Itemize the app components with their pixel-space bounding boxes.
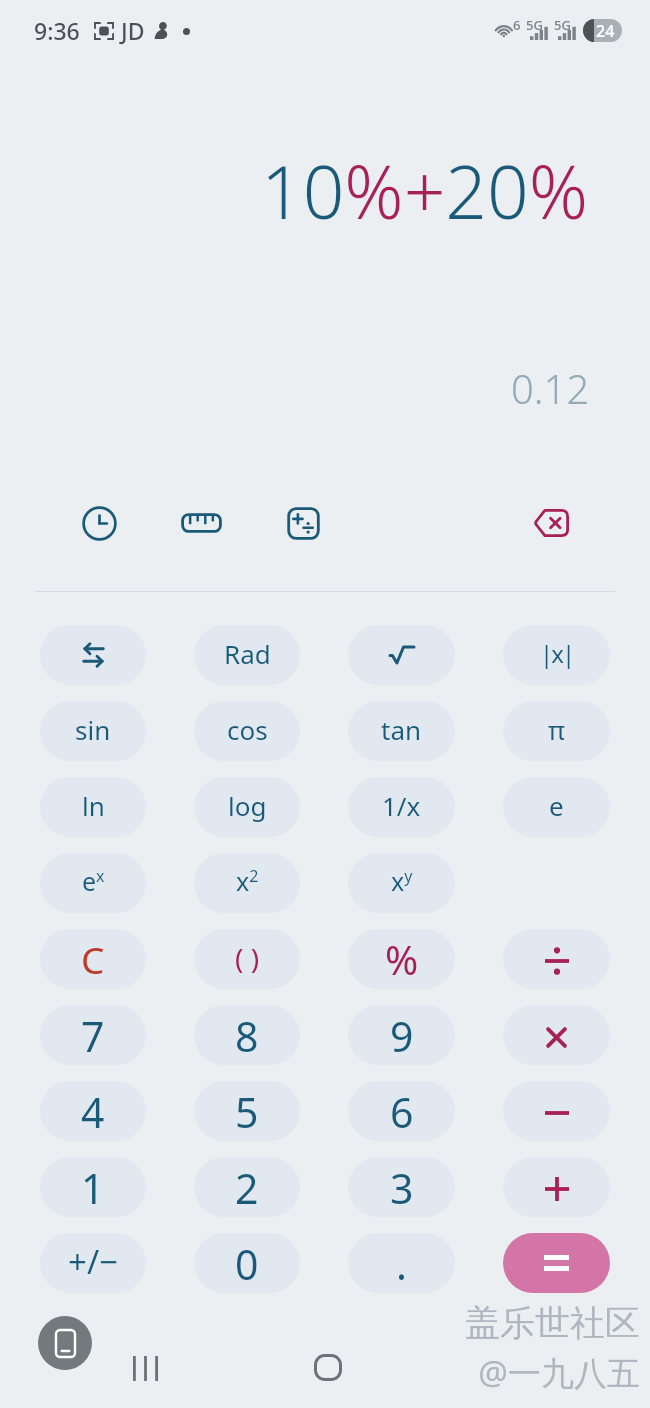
staticText: 9:36	[34, 15, 80, 46]
button[interactable]: x2	[194, 853, 300, 913]
staticText: 0	[235, 1236, 259, 1292]
staticText: sin	[75, 712, 111, 747]
staticText: 4	[81, 1084, 105, 1140]
button[interactable]: sin	[40, 701, 146, 761]
button[interactable]	[503, 1005, 610, 1065]
staticText: x2	[236, 864, 259, 898]
button[interactable]: Backspace	[530, 502, 572, 544]
button[interactable]: tan	[348, 701, 455, 761]
button[interactable]: %	[348, 929, 455, 989]
button[interactable]: ex	[40, 853, 146, 913]
staticText: 24	[596, 20, 615, 42]
button[interactable]: Switch to one-handed mode	[38, 1316, 92, 1370]
staticText: 6	[390, 1084, 414, 1140]
button[interactable]: Equals	[503, 1233, 610, 1293]
staticText: ( )	[235, 939, 260, 977]
button[interactable]: 9	[348, 1005, 455, 1065]
button[interactable]	[503, 929, 610, 989]
staticText: 8	[235, 1008, 259, 1064]
staticText: e	[549, 788, 564, 823]
staticText: tan	[381, 712, 422, 747]
staticText: cos	[227, 712, 268, 747]
staticText: xy	[391, 864, 413, 898]
staticText: ex	[82, 864, 105, 898]
button[interactable]: ln	[40, 777, 146, 837]
staticText: 5G	[554, 16, 571, 34]
staticText: 7	[81, 1008, 105, 1064]
staticText: log	[228, 788, 267, 823]
button[interactable]: 7	[40, 1005, 146, 1065]
staticText: @一九八五	[332, 1350, 640, 1395]
staticText: π	[548, 712, 565, 747]
button[interactable]: Calculation history	[78, 502, 120, 544]
staticText: 9	[390, 1008, 414, 1064]
button[interactable]: e	[503, 777, 610, 837]
button[interactable]	[40, 625, 146, 685]
staticText: 6	[513, 16, 521, 34]
button[interactable]: ( )	[194, 929, 300, 989]
staticText: C	[81, 934, 105, 984]
staticText: .	[396, 1236, 407, 1292]
button[interactable]: xy	[348, 853, 455, 913]
button[interactable]: 3	[348, 1157, 455, 1217]
button[interactable]: Rad	[194, 625, 300, 685]
staticText: 5G	[526, 16, 543, 34]
button[interactable]: 5	[194, 1081, 300, 1141]
button[interactable]: C	[40, 929, 146, 989]
staticText: 5	[235, 1084, 259, 1140]
button[interactable]: 8	[194, 1005, 300, 1065]
staticText: 盖乐世社区	[332, 1301, 640, 1345]
button[interactable]: log	[194, 777, 300, 837]
button[interactable]: Unit converter	[180, 502, 222, 544]
button[interactable]	[503, 1157, 610, 1217]
staticText: 1	[81, 1160, 105, 1216]
button[interactable]: 2	[194, 1157, 300, 1217]
staticText: 1/x	[382, 788, 421, 823]
staticText: 10%+20%	[261, 141, 588, 240]
button[interactable]: π	[503, 701, 610, 761]
button[interactable]: +/−	[40, 1233, 146, 1293]
button[interactable]: cos	[194, 701, 300, 761]
button[interactable]: 6	[348, 1081, 455, 1141]
button[interactable]: 1/x	[348, 777, 455, 837]
button[interactable]: Recent apps	[124, 1347, 167, 1390]
staticText: 0.12	[511, 361, 590, 415]
button[interactable]	[348, 625, 455, 685]
staticText: +/−	[68, 1239, 119, 1284]
button[interactable]: 1	[40, 1157, 146, 1217]
staticText: ln	[82, 788, 105, 823]
staticText: JD	[121, 15, 145, 46]
staticText: %	[385, 932, 419, 986]
staticText: |x|	[540, 637, 574, 670]
staticText: 2	[235, 1160, 259, 1216]
button[interactable]: 4	[40, 1081, 146, 1141]
button[interactable]: Scientific calculator	[282, 502, 324, 544]
button[interactable]	[503, 1081, 610, 1141]
button[interactable]: |x|	[503, 625, 610, 685]
staticText: 3	[390, 1160, 414, 1216]
button[interactable]: Home	[306, 1346, 349, 1389]
button[interactable]: 0	[194, 1233, 300, 1293]
button[interactable]: .	[348, 1233, 455, 1293]
staticText: Rad	[224, 636, 271, 671]
